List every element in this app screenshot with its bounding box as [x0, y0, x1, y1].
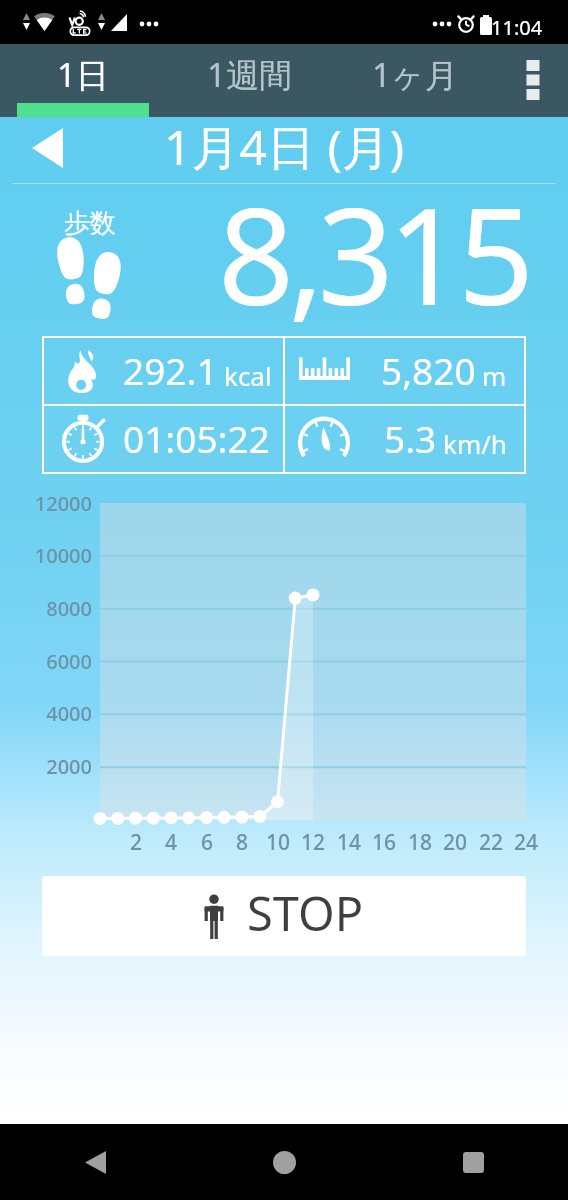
staticText: 2 — [116, 828, 156, 857]
button[interactable]: 1ヶ月 — [332, 44, 498, 117]
staticText: 14 — [329, 828, 369, 857]
staticText: km/h — [443, 426, 507, 461]
staticText: kcal — [224, 358, 272, 393]
staticText: 1月4日 (月) — [164, 114, 405, 180]
button[interactable]: Recents — [379, 1124, 568, 1200]
staticText: 12000 — [0, 490, 92, 517]
staticText: 4000 — [0, 700, 92, 727]
button[interactable]: STOP — [42, 876, 526, 956]
staticText: 10 — [258, 828, 298, 857]
staticText: 22 — [471, 828, 511, 857]
button[interactable]: 1週間 — [166, 44, 332, 117]
staticText: 16 — [364, 828, 404, 857]
button[interactable]: Back — [0, 1124, 190, 1200]
staticText: 10000 — [0, 542, 92, 569]
button[interactable]: 5.3 — [284, 405, 525, 473]
staticText: 6000 — [0, 648, 92, 675]
button[interactable]: 01:05:22 — [43, 405, 284, 473]
staticText: 11:04 — [491, 14, 543, 41]
staticText: 8 — [222, 828, 262, 857]
button[interactable]: Previous day — [17, 118, 77, 178]
staticText: 4 — [151, 828, 191, 857]
button[interactable]: 1日 — [0, 44, 166, 117]
staticText: 292.1 — [123, 345, 218, 395]
staticText: 歩数 — [64, 207, 116, 240]
staticText: 5.3 — [384, 413, 437, 463]
staticText: 1日 — [57, 52, 109, 97]
staticText: 8000 — [0, 595, 92, 622]
staticText: 8,315 — [0, 163, 528, 344]
button[interactable]: 5,820 — [284, 337, 525, 405]
staticText: 1週間 — [207, 52, 292, 97]
staticText: m — [482, 358, 507, 393]
button[interactable]: More options — [498, 44, 568, 117]
staticText: 24 — [506, 828, 546, 857]
staticText: 01:05:22 — [123, 413, 270, 463]
staticText: 18 — [400, 828, 440, 857]
staticText: 6 — [187, 828, 227, 857]
staticText: 20 — [435, 828, 475, 857]
staticText: 12 — [293, 828, 333, 857]
staticText: STOP — [247, 881, 364, 945]
staticText: 1ヶ月 — [372, 52, 458, 97]
button[interactable]: 292.1 — [43, 337, 284, 405]
staticText: 5,820 — [381, 345, 476, 395]
staticText: 2000 — [0, 753, 92, 780]
button[interactable]: Home — [190, 1124, 379, 1200]
